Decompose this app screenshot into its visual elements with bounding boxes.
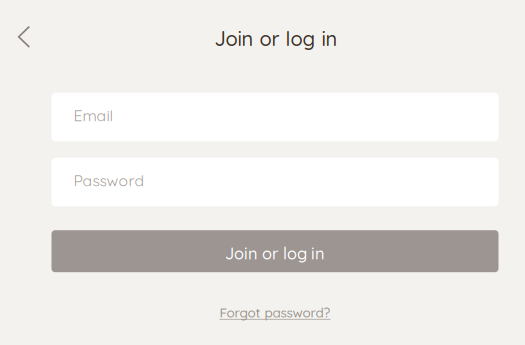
staticText: Password [73, 170, 144, 190]
staticText: Email [73, 105, 113, 125]
button[interactable]: Password [51, 158, 498, 206]
staticText: Join or log in [225, 243, 325, 264]
button[interactable]: Forgot password? [51, 300, 498, 324]
staticText: Join or log in [214, 26, 337, 51]
button[interactable]: Email [51, 93, 498, 141]
button[interactable]: Join or log in [51, 230, 498, 272]
staticText: Forgot password? [219, 304, 330, 321]
button[interactable]: Back [3, 16, 45, 58]
